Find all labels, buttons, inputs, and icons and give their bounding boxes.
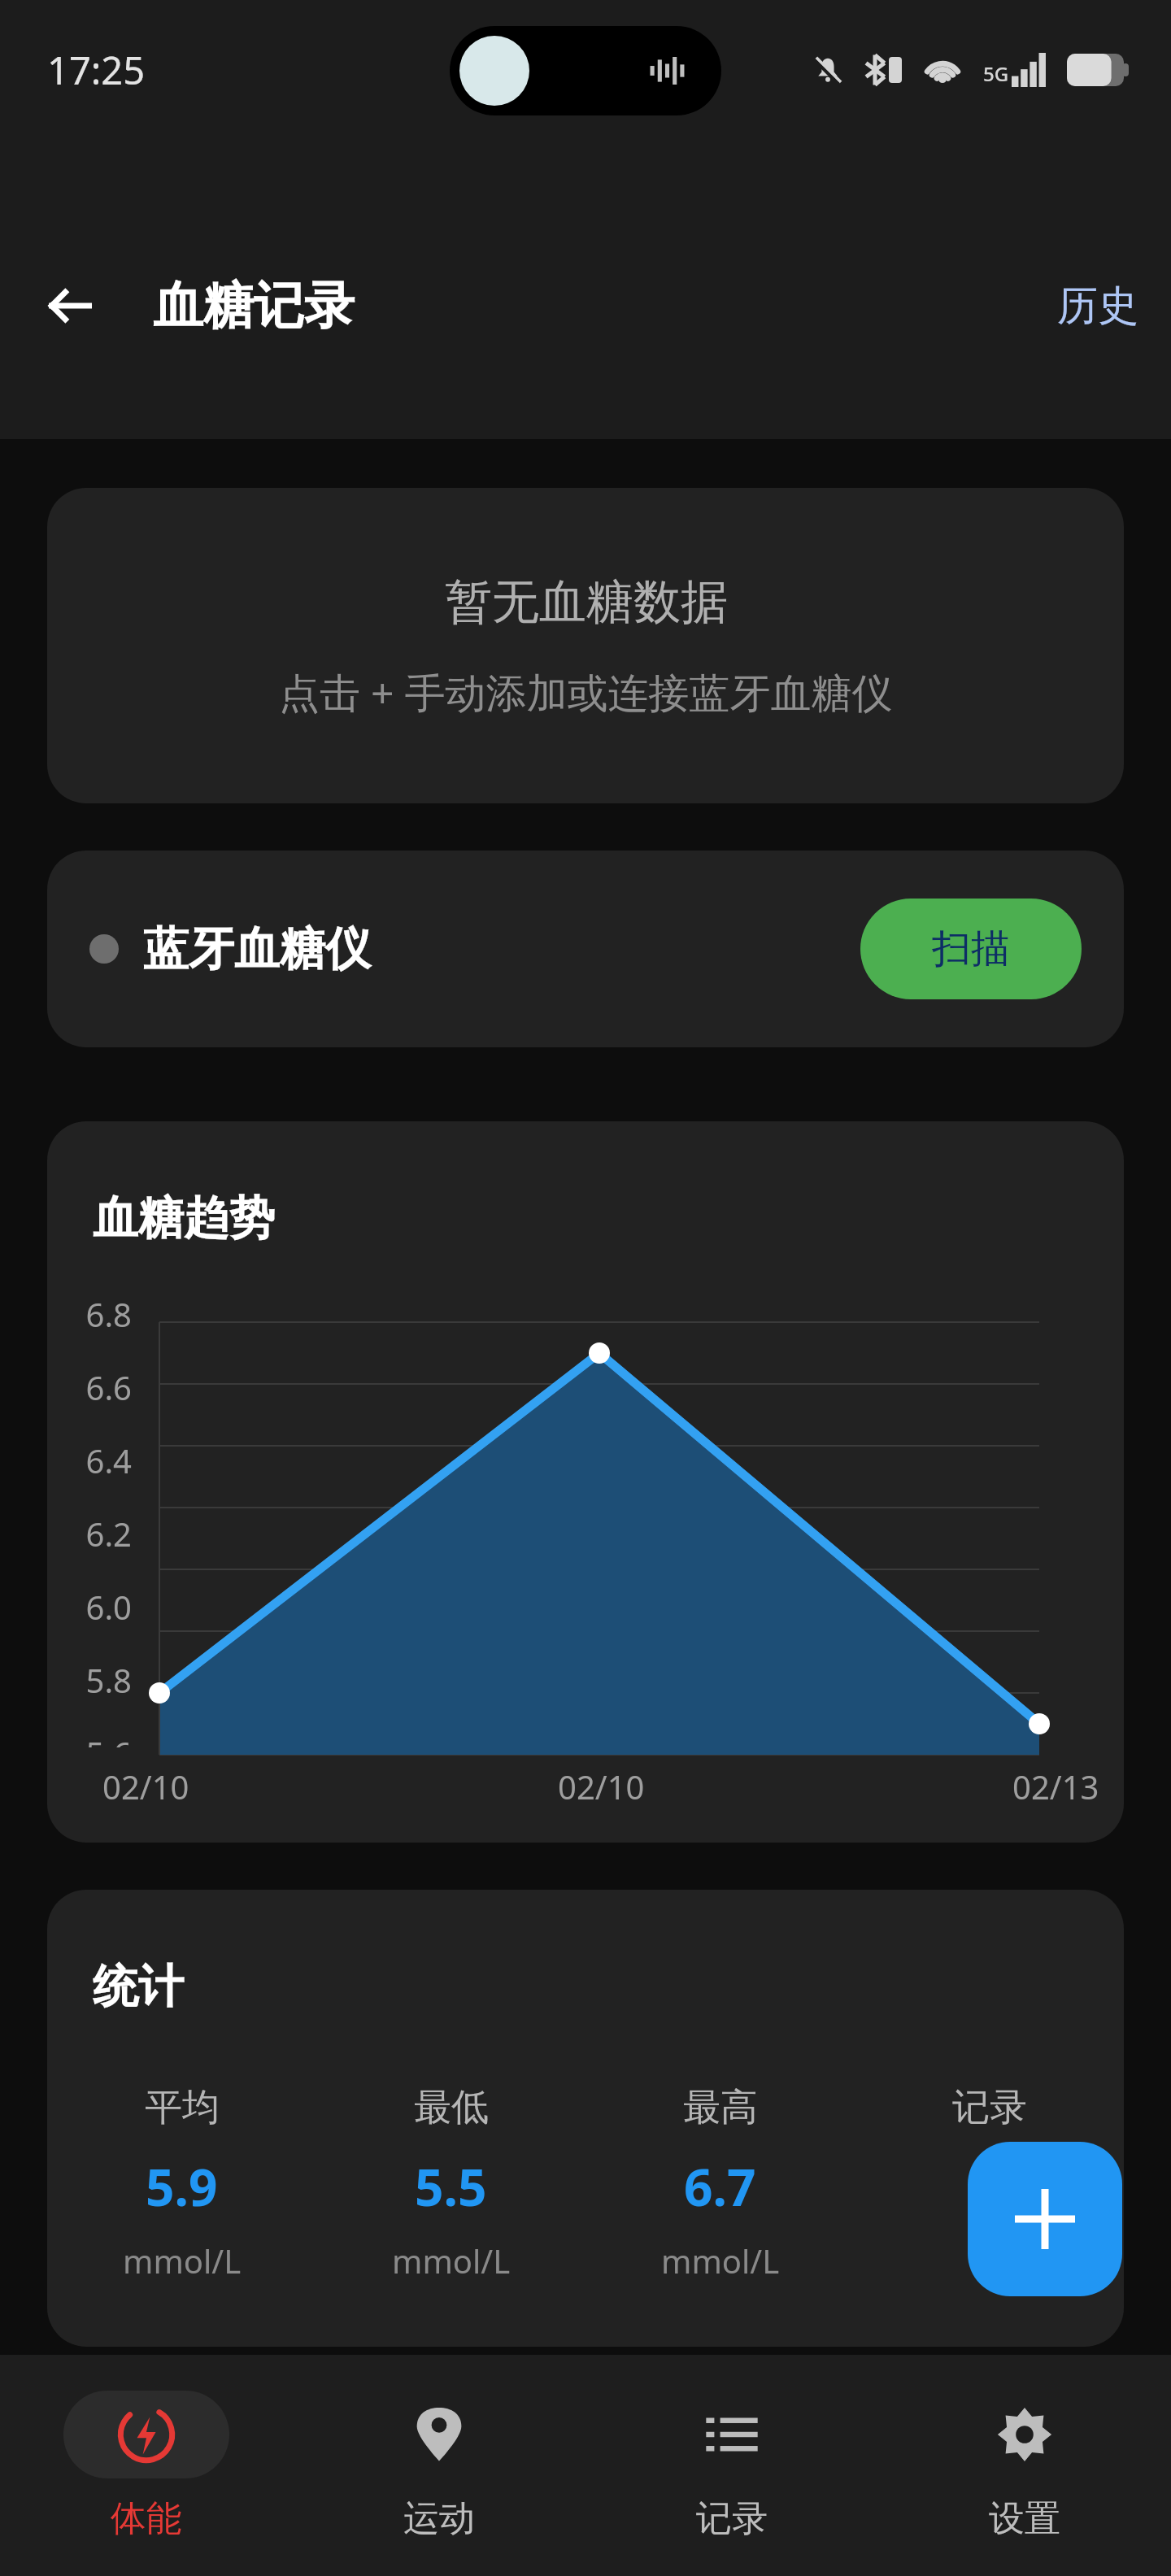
staticText: 点击 + 手动添加或连接蓝牙血糖仪	[279, 664, 893, 720]
staticText: 最低	[414, 2084, 489, 2131]
staticText: 平均	[145, 2084, 220, 2131]
staticText: 6.6	[47, 1365, 132, 1409]
staticText: 血糖趋势	[93, 1190, 275, 1247]
staticText: 02/10	[102, 1764, 189, 1808]
staticText: 统计	[93, 1958, 184, 2016]
staticText: 蓝牙血糖仪	[143, 920, 371, 978]
button[interactable]: 设置	[878, 2355, 1171, 2576]
staticText: 5.8	[47, 1658, 132, 1702]
staticText: 次	[973, 2239, 1006, 2279]
staticText: 5G	[983, 60, 1009, 87]
staticText: 5.9	[146, 2152, 218, 2221]
staticText: 5.6	[47, 1731, 132, 1747]
staticText: 运动	[403, 2496, 475, 2541]
button[interactable]: 暂无血糖数据	[47, 488, 1124, 803]
staticText: 6.2	[47, 1512, 132, 1556]
button[interactable]: 运动	[293, 2355, 585, 2576]
staticText: 历史	[1057, 281, 1138, 332]
button[interactable]: 返回	[33, 268, 107, 343]
staticText: 最高	[683, 2084, 758, 2131]
staticText: 6.7	[684, 2152, 756, 2221]
button[interactable]: 历史	[1025, 261, 1171, 351]
staticText: 6.4	[47, 1438, 132, 1482]
staticText: 体能	[111, 2496, 182, 2541]
staticText: 暂无血糖数据	[445, 572, 728, 632]
staticText: 血糖记录	[153, 274, 355, 337]
staticText: 3	[975, 2152, 1004, 2221]
button[interactable]: 记录	[585, 2355, 878, 2576]
button[interactable]: 体能	[0, 2355, 293, 2576]
staticText: 扫描	[932, 925, 1010, 973]
button[interactable]: 扫描	[860, 899, 1082, 999]
staticText: 6.8	[47, 1292, 132, 1336]
staticText: 设置	[989, 2496, 1060, 2541]
staticText: 记录	[952, 2084, 1027, 2131]
staticText: 记录	[696, 2496, 768, 2541]
staticText: mmol/L	[392, 2239, 511, 2282]
staticText: 02/10	[558, 1764, 645, 1808]
staticText: 6.0	[47, 1585, 132, 1629]
button[interactable]: 添加血糖记录	[968, 2142, 1122, 2296]
staticText: mmol/L	[661, 2239, 780, 2282]
staticText: 17:25	[47, 44, 146, 96]
staticText: mmol/L	[123, 2239, 242, 2282]
staticText: 02/13	[1012, 1764, 1099, 1808]
staticText: 5.5	[415, 2152, 487, 2221]
